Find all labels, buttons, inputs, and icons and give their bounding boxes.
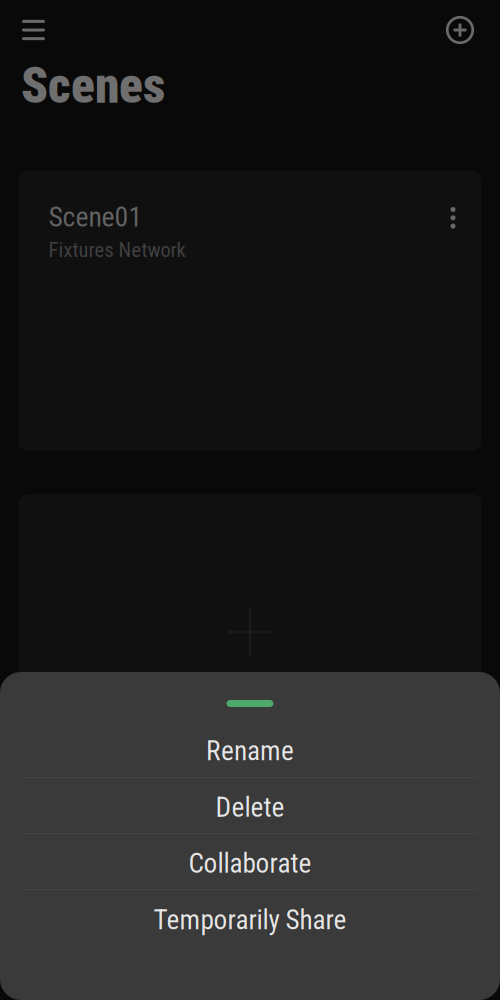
button[interactable]: Scene01 xyxy=(18,171,481,451)
staticText: Scene01 xyxy=(48,201,142,233)
staticText: Rename xyxy=(206,735,294,767)
staticText: Temporarily Share xyxy=(153,904,346,936)
staticText: Delete xyxy=(215,791,284,823)
staticText: Fixtures Network xyxy=(48,238,185,262)
button[interactable]: Menu xyxy=(0,0,59,52)
button[interactable]: Add scene xyxy=(431,0,500,52)
button[interactable]: Temporarily Share xyxy=(0,890,500,946)
button[interactable]: Delete xyxy=(0,778,500,833)
staticText: Scenes xyxy=(21,57,165,115)
button[interactable]: Collaborate xyxy=(0,834,500,889)
button[interactable]: Add scene xyxy=(18,494,481,774)
staticText: Collaborate xyxy=(188,847,311,879)
button[interactable]: Rename xyxy=(0,721,500,777)
